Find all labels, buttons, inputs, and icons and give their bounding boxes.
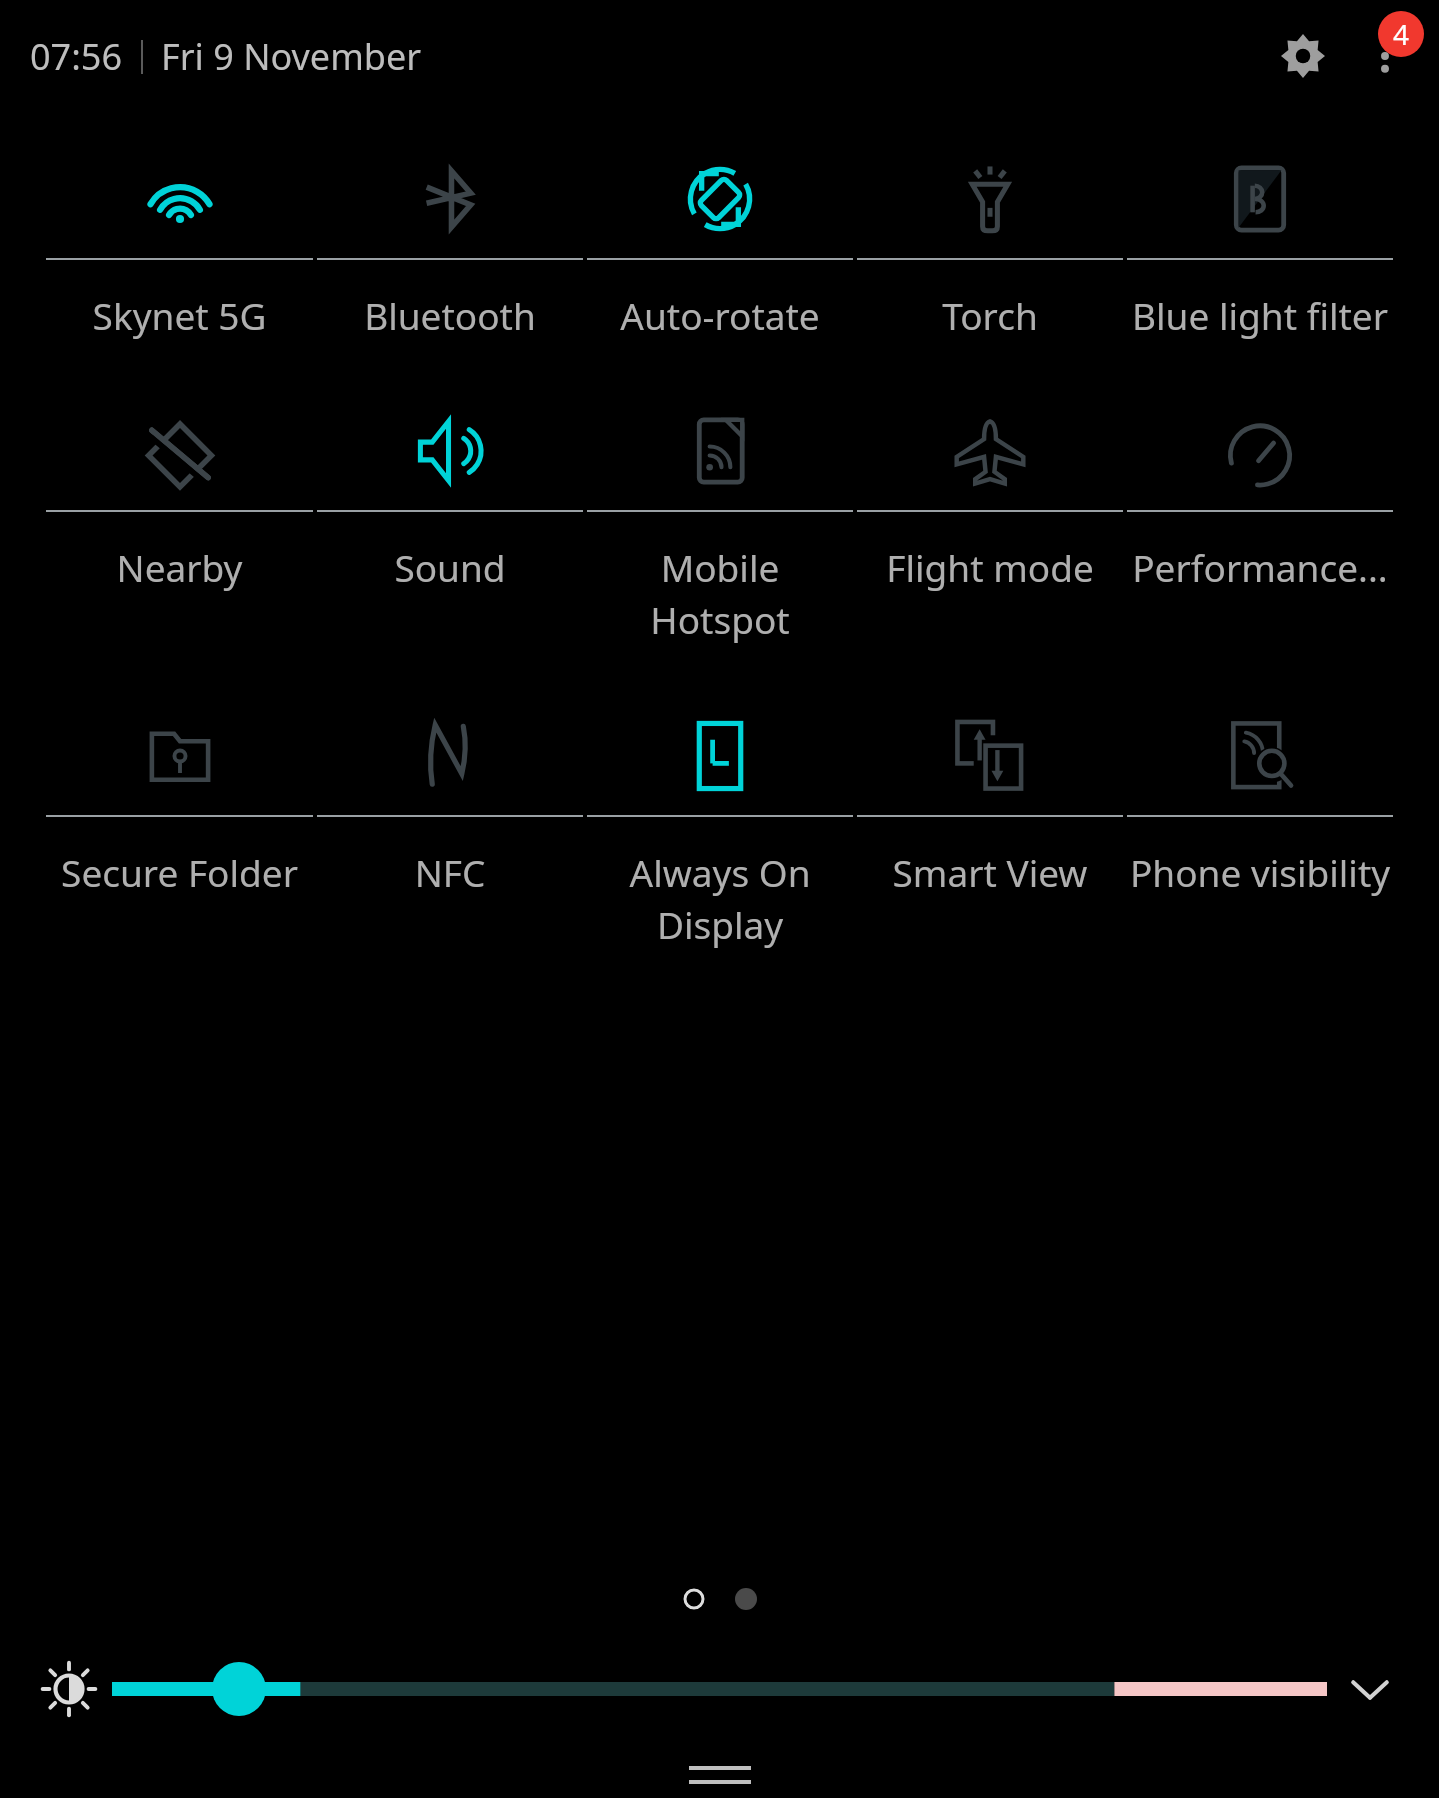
button[interactable]: Sound: [315, 392, 585, 592]
button[interactable]: [683, 1588, 705, 1610]
button[interactable]: Nearby: [44, 392, 315, 592]
staticText: Fri 9 November: [161, 32, 422, 81]
staticText: Blue light filter: [1127, 290, 1393, 340]
button[interactable]: [112, 1646, 1327, 1732]
button[interactable]: Secure Folder: [44, 697, 315, 897]
button[interactable]: Bluetooth: [315, 140, 585, 340]
staticText: Skynet 5G: [46, 290, 313, 340]
button[interactable]: Auto-rotate: [585, 140, 855, 340]
staticText: Torch: [857, 290, 1123, 340]
button[interactable]: Skynet 5G: [44, 140, 315, 340]
button[interactable]: More options: [1353, 24, 1417, 88]
button[interactable]: Always On Display: [585, 697, 855, 950]
button[interactable]: [735, 1588, 757, 1610]
staticText: Secure Folder: [46, 847, 313, 897]
button[interactable]: Smart View: [855, 697, 1125, 897]
staticText: Bluetooth: [317, 290, 583, 340]
button[interactable]: Blue light filter: [1125, 140, 1395, 340]
staticText: NFC: [317, 847, 583, 897]
button[interactable]: Settings: [1271, 24, 1335, 88]
staticText: Smart View: [857, 847, 1123, 897]
staticText: 4: [1393, 15, 1410, 53]
button[interactable]: Expand brightness settings: [1327, 1646, 1413, 1732]
button[interactable]: Mobile Hotspot: [585, 392, 855, 645]
staticText: Flight mode: [857, 542, 1123, 592]
staticText: Nearby: [46, 542, 313, 592]
button[interactable]: Phone visibility: [1125, 697, 1395, 897]
staticText: Phone visibility: [1127, 847, 1393, 897]
staticText: Auto-rotate: [587, 290, 853, 340]
staticText: 07:56: [30, 32, 123, 81]
staticText: Sound: [317, 542, 583, 592]
button[interactable]: NFC: [315, 697, 585, 897]
button[interactable]: Performance...: [1125, 392, 1395, 592]
staticText: Mobile Hotspot: [587, 542, 853, 645]
staticText: Always On Display: [587, 847, 853, 950]
button[interactable]: Torch: [855, 140, 1125, 340]
button[interactable]: Flight mode: [855, 392, 1125, 592]
button[interactable]: Auto brightness: [26, 1646, 112, 1732]
staticText: Performance...: [1127, 542, 1393, 592]
